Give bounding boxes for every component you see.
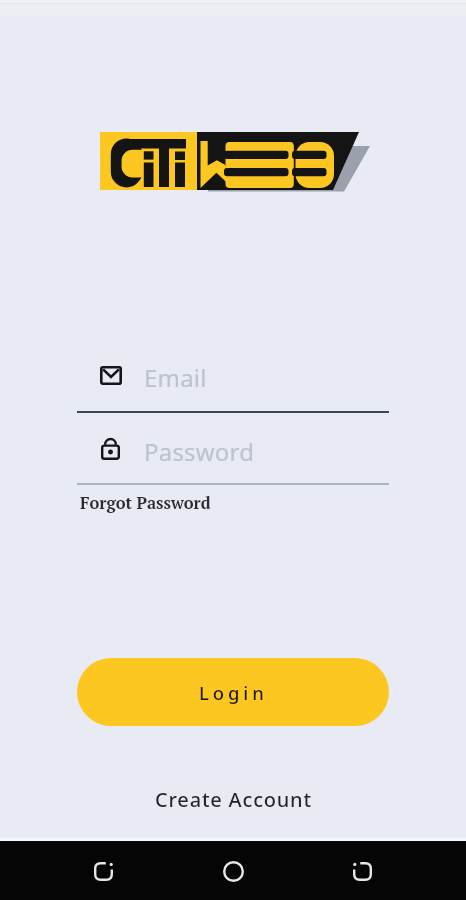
button[interactable]: Home <box>203 846 263 896</box>
button[interactable]: Recent apps <box>332 846 392 896</box>
staticText: Create Account <box>155 786 312 813</box>
button[interactable]: Forgot Password <box>80 492 211 514</box>
button[interactable]: Back <box>73 846 133 896</box>
other: Password <box>101 436 120 460</box>
staticText: Email <box>144 361 207 394</box>
other: Email <box>100 366 122 385</box>
button[interactable]: Login <box>77 658 389 726</box>
staticText: Password <box>144 435 255 468</box>
button[interactable]: Create Account <box>145 780 322 819</box>
staticText: Login <box>199 680 268 705</box>
staticText: Forgot Password <box>80 492 211 514</box>
